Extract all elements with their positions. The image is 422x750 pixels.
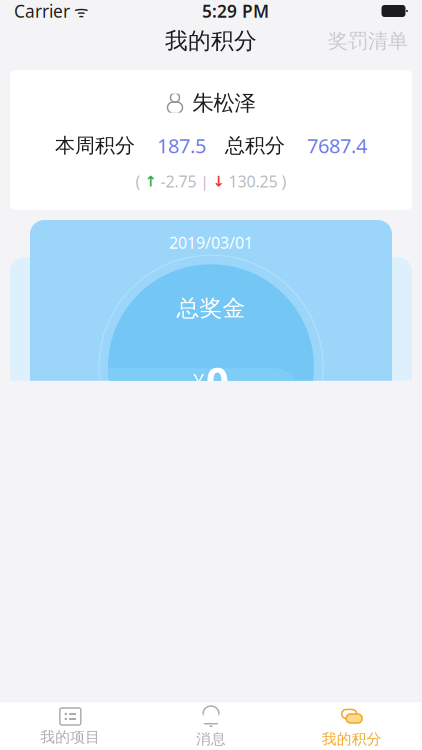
staticText: 奖罚清单	[328, 29, 408, 53]
staticText: (	[135, 171, 140, 192]
staticText: Carrier	[14, 0, 70, 22]
staticText: 我的项目	[40, 728, 100, 746]
staticText: 2019/03/01	[169, 232, 253, 253]
staticText: <	[115, 684, 126, 711]
staticText: 我的积分	[165, 27, 257, 55]
staticText: 总奖金	[176, 294, 245, 322]
staticText: 总积分	[225, 133, 285, 158]
staticText: ᯤ	[70, 0, 89, 22]
staticText: 我的积分	[322, 730, 382, 748]
staticText: 5:29 PM	[202, 0, 269, 22]
staticText: 2019年03月	[154, 683, 268, 712]
staticText: 本周积分	[55, 133, 135, 158]
staticText: )	[281, 171, 286, 192]
button[interactable]: 消息	[141, 700, 281, 750]
staticText: 0	[206, 354, 229, 407]
button[interactable]: 我的积分	[281, 700, 422, 750]
staticText: 130.25	[228, 171, 277, 192]
staticText: ¥	[193, 367, 204, 394]
button[interactable]: 奖罚清单	[314, 21, 422, 61]
staticText: |	[200, 172, 208, 191]
staticText: ↑	[144, 173, 156, 190]
button[interactable]: Previous month	[97, 678, 144, 717]
staticText: 消息	[196, 730, 226, 748]
button[interactable]: Next month	[278, 678, 325, 717]
staticText: 187.5	[157, 132, 206, 159]
staticText: -2.75	[160, 171, 196, 192]
staticText: ↓	[212, 173, 224, 190]
staticText: 朱松泽	[192, 90, 255, 116]
button[interactable]: 我的项目	[0, 702, 141, 750]
staticText: >	[296, 684, 307, 711]
staticText: 7687.4	[307, 132, 367, 159]
